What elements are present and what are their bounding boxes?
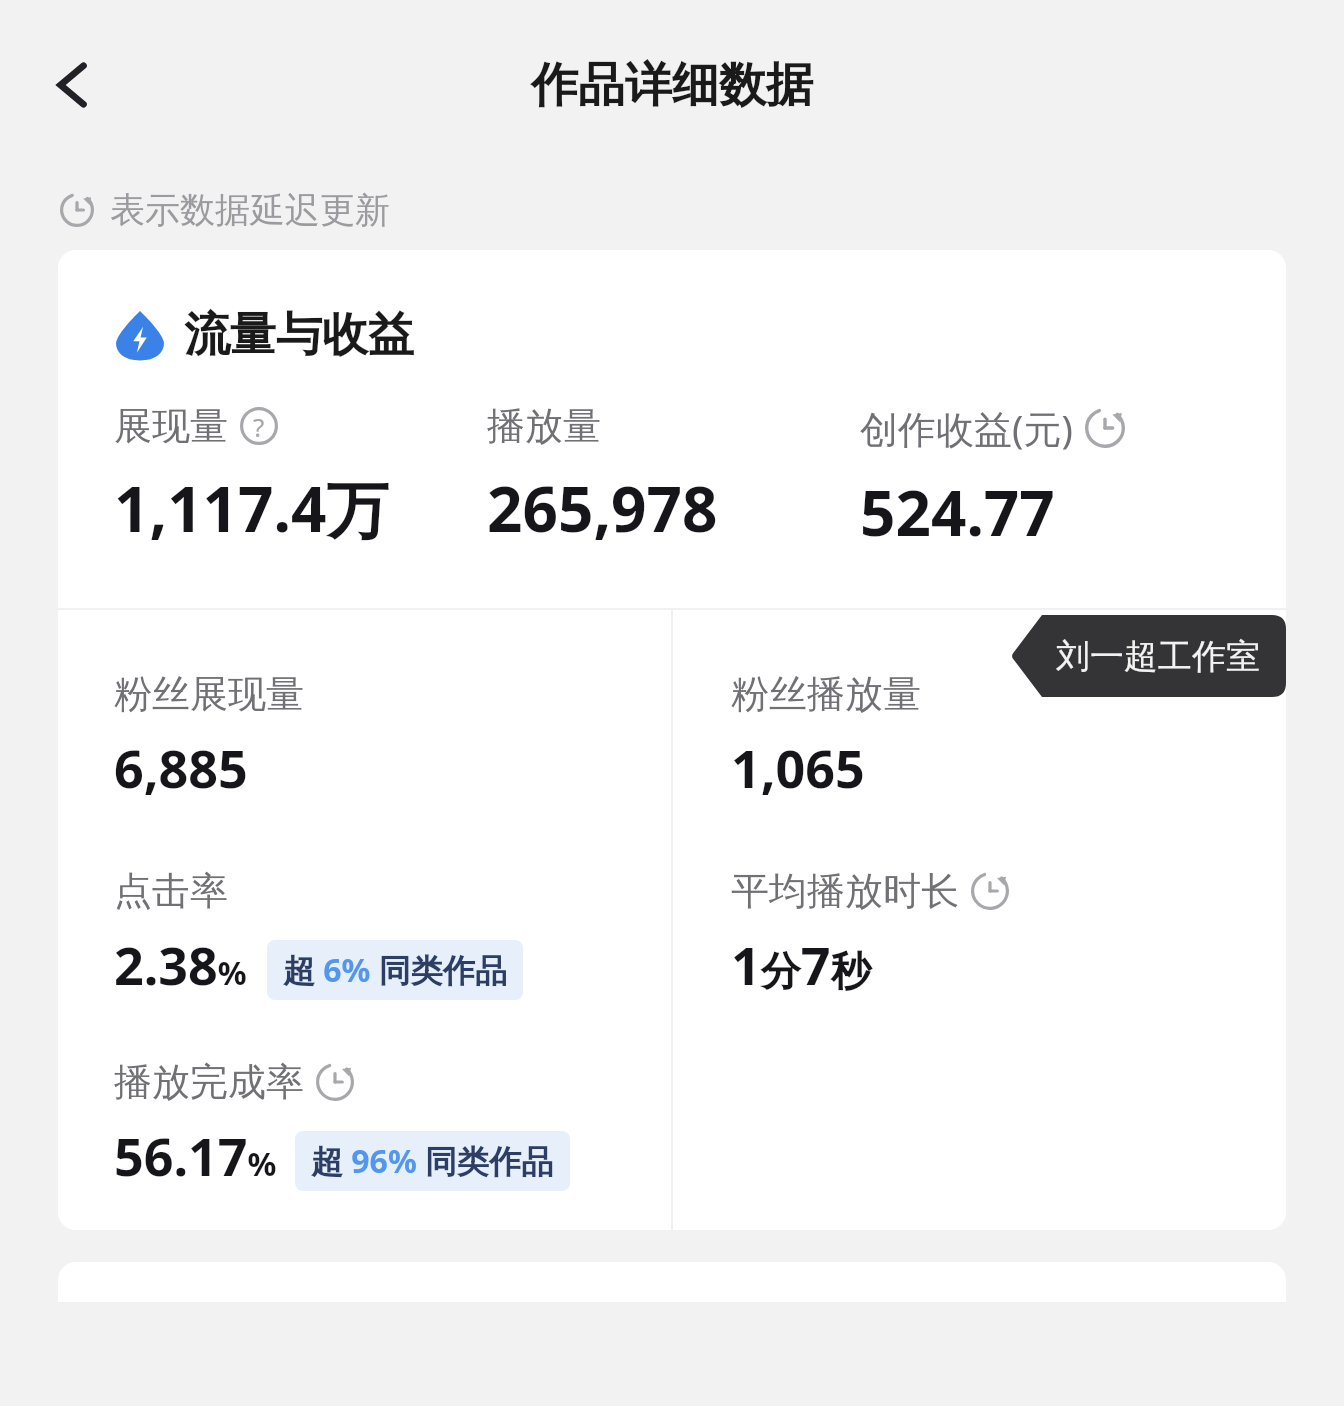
staticText: 流量与收益 [184, 306, 414, 364]
staticText: 作品详细数据 [531, 56, 813, 115]
button[interactable]: 平均播放时长 [731, 867, 1009, 1000]
staticText: 展现量 [114, 402, 228, 450]
staticText: 创作收益(元) [860, 402, 1073, 454]
staticText: 265,978 [487, 466, 718, 550]
staticText: 点击率 [114, 867, 228, 915]
button[interactable]: Back [30, 43, 114, 127]
button[interactable]: 粉丝展现量 [114, 670, 304, 803]
button[interactable]: 刘一超工作室 [1012, 615, 1286, 697]
staticText: 6,885 [114, 732, 248, 803]
staticText: 刘一超工作室 [1056, 635, 1260, 678]
button[interactable]: 播放量 [487, 402, 860, 550]
staticText: 1,065 [731, 732, 865, 803]
staticText: 粉丝展现量 [114, 670, 304, 718]
staticText: 粉丝播放量 [731, 670, 921, 718]
staticText: 超 6% 同类作品 [283, 948, 507, 992]
button[interactable]: 展现量 [114, 402, 487, 551]
staticText: 表示数据延迟更新 [110, 188, 390, 232]
button[interactable]: 点击率 [114, 867, 523, 1000]
staticText: 播放完成率 [114, 1058, 304, 1106]
staticText: 播放量 [487, 402, 601, 450]
button[interactable]: 创作收益(元) [860, 402, 1256, 554]
staticText: 56.17% [114, 1120, 277, 1191]
staticText: 2.38% [114, 929, 247, 1000]
staticText: 1,117.4万 [114, 466, 389, 551]
staticText: 1分7秒 [731, 929, 871, 1000]
staticText: 524.77 [860, 470, 1055, 554]
staticText: 平均播放时长 [731, 867, 959, 915]
button[interactable]: 播放完成率 [114, 1058, 570, 1191]
button[interactable]: 流量与收益 [114, 306, 414, 364]
staticText: ? [253, 409, 265, 444]
staticText: 超 96% 同类作品 [311, 1139, 554, 1183]
button[interactable]: 粉丝播放量 [731, 670, 921, 803]
